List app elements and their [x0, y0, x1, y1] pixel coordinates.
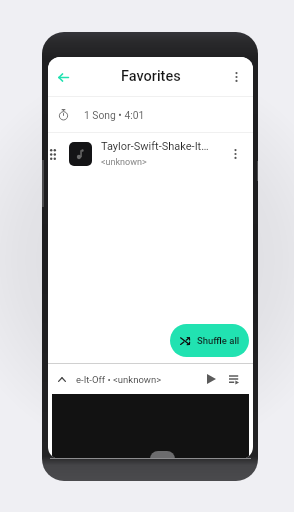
button[interactable]: Reorder: [48, 140, 69, 168]
button[interactable]: Back: [51, 65, 75, 89]
button[interactable]: Expand player: [48, 364, 253, 394]
staticText: Favorites: [121, 68, 181, 85]
button[interactable]: Queue: [225, 368, 243, 390]
button[interactable]: Song options: [225, 144, 245, 164]
button[interactable]: More options: [225, 66, 247, 88]
button[interactable]: Reorder: [48, 133, 253, 175]
staticText: Shuffle all: [197, 335, 240, 346]
button[interactable]: Expand player: [54, 371, 70, 387]
button[interactable]: Shuffle all: [170, 324, 249, 357]
staticText: 1 Song • 4:01: [84, 109, 145, 121]
staticText: <unknown>: [101, 157, 147, 168]
staticText: Taylor-Swift-Shake-It…: [101, 140, 209, 153]
staticText: e-It-Off • <unknown>: [76, 374, 202, 385]
button[interactable]: Play: [202, 368, 220, 390]
